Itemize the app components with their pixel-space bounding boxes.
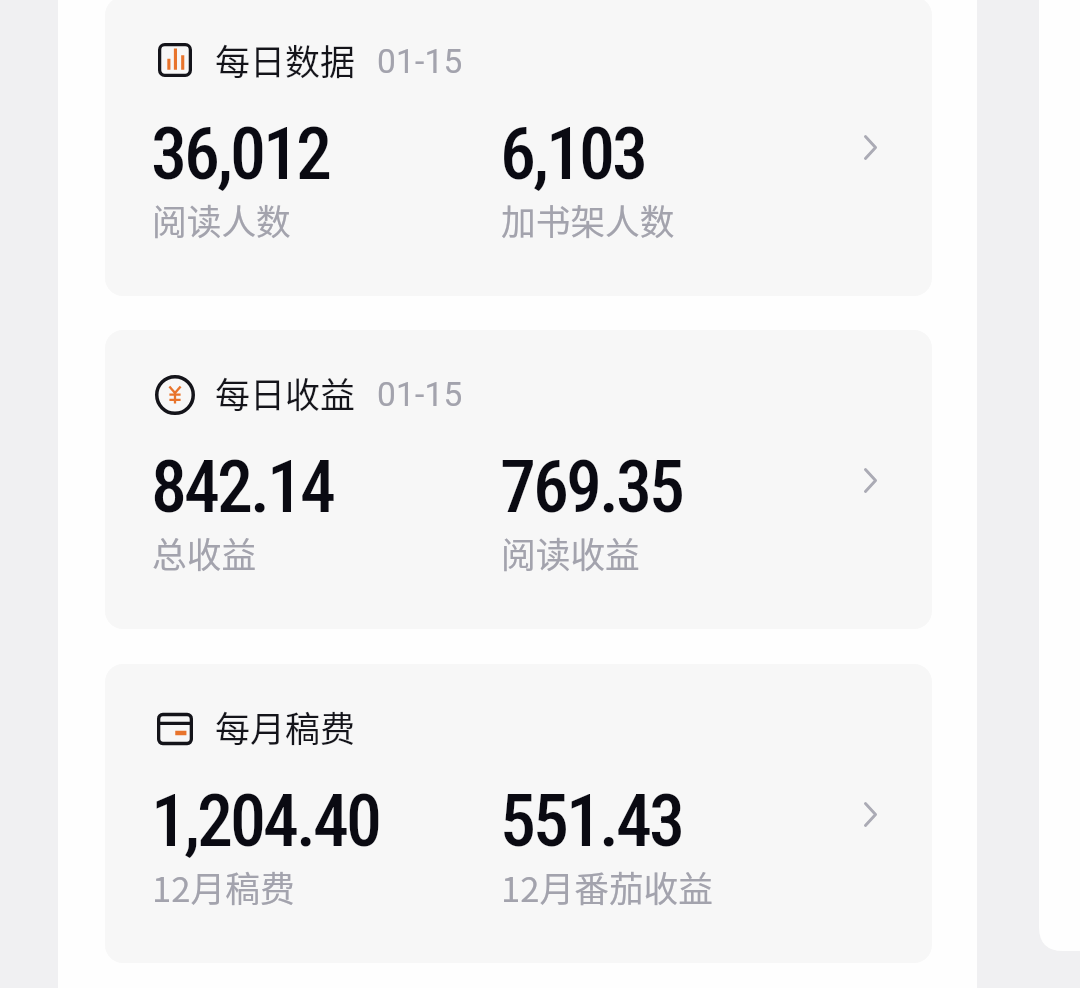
staticText: 12月番茄收益 <box>501 862 713 912</box>
staticText: 36,012 <box>151 112 330 196</box>
button[interactable]: 查看详情 <box>835 107 905 187</box>
staticText: 每日收益 <box>215 367 356 418</box>
staticText: 769.35 <box>500 445 683 529</box>
staticText: 842.14 <box>151 445 334 529</box>
staticText: 12月稿费 <box>152 862 295 912</box>
staticText: 551.43 <box>500 779 683 863</box>
staticText: 阅读人数 <box>152 195 291 245</box>
staticText: 加书架人数 <box>501 195 675 245</box>
staticText: 总收益 <box>152 528 257 578</box>
staticText: 01-15 <box>377 375 463 414</box>
staticText: 1,204.40 <box>151 779 380 863</box>
button[interactable]: 每日收益 <box>105 330 932 629</box>
staticText: 阅读收益 <box>501 528 640 578</box>
button[interactable]: 查看详情 <box>835 440 905 520</box>
button[interactable]: 每月稿费 <box>105 664 932 963</box>
button[interactable]: 查看详情 <box>835 774 905 854</box>
button[interactable]: 每日数据 <box>105 0 932 296</box>
staticText: 每日数据 <box>215 34 356 85</box>
staticText: 每月稿费 <box>215 701 356 752</box>
staticText: 01-15 <box>377 42 463 81</box>
staticText: 6,103 <box>500 112 646 196</box>
